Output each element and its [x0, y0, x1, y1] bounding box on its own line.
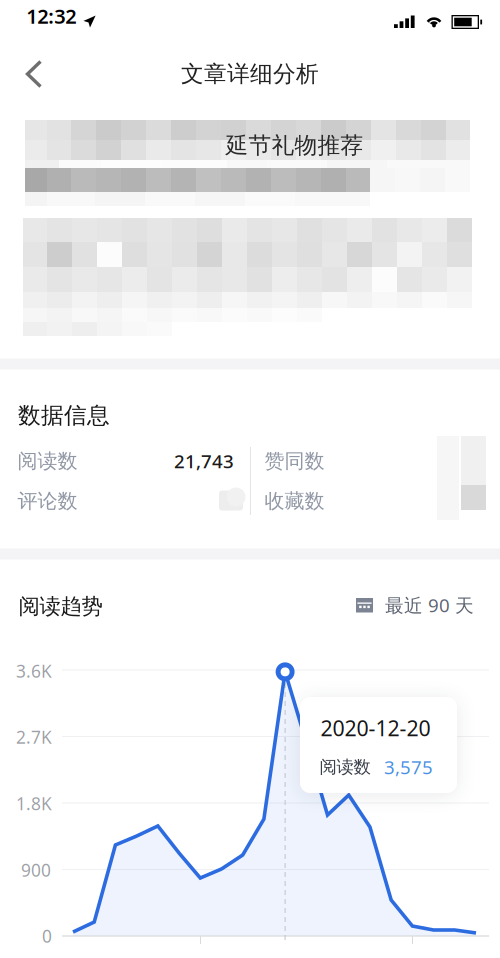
staticText: 阅读数 — [17, 449, 77, 473]
staticText: 阅读数 — [319, 756, 370, 778]
staticText: 0 — [42, 924, 52, 947]
staticText: 3,575 — [384, 755, 433, 779]
staticText: 延节礼物推荐 — [225, 132, 363, 159]
staticText: 3.6K — [16, 659, 52, 682]
staticText: 收藏数 — [264, 489, 324, 513]
staticText: 评论数 — [17, 489, 77, 513]
staticText: 数据信息 — [18, 402, 110, 429]
staticText: 阅读趋势 — [18, 593, 102, 620]
staticText: 21,743 — [174, 449, 234, 473]
staticText: 2020-12-20 — [320, 714, 430, 742]
staticText: 赞同数 — [264, 449, 324, 473]
staticText: 900 — [21, 858, 51, 881]
staticText: 1.8K — [16, 792, 52, 815]
staticText: 2.7K — [16, 725, 52, 748]
button[interactable]: 最近 90 天 — [0, 0, 500, 958]
staticText: 最近 90 天 — [385, 593, 474, 617]
staticText: 文章详细分析 — [181, 60, 319, 88]
staticText: 12:32 — [26, 3, 76, 29]
button[interactable]: Back — [7, 47, 61, 101]
